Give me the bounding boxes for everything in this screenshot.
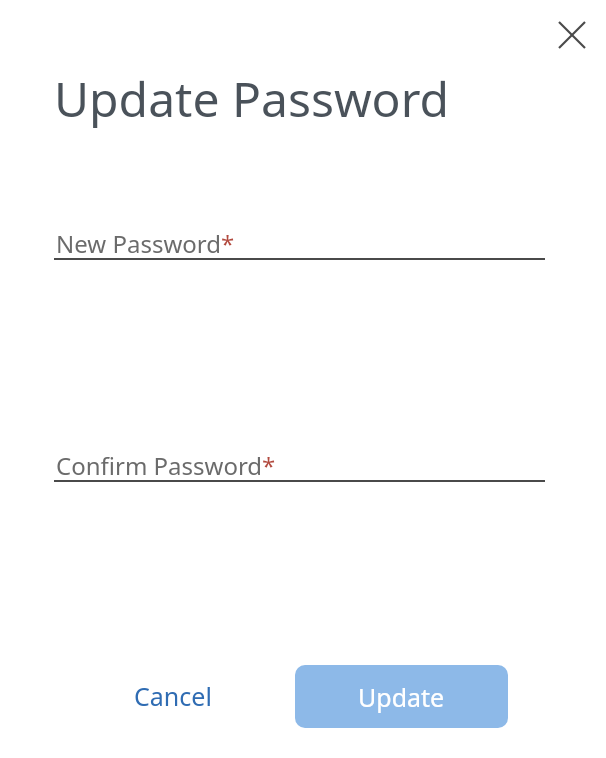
button[interactable]: Close xyxy=(548,11,596,59)
button[interactable]: New Password* xyxy=(0,227,606,267)
staticText: Update Password xyxy=(54,66,450,131)
staticText: Update xyxy=(358,680,445,714)
staticText: Confirm Password* xyxy=(56,449,276,482)
button[interactable]: Update xyxy=(295,665,508,728)
staticText: Cancel xyxy=(134,679,212,713)
button[interactable]: Cancel xyxy=(119,669,227,723)
staticText: New Password* xyxy=(56,227,235,260)
button[interactable]: Confirm Password* xyxy=(0,449,606,489)
